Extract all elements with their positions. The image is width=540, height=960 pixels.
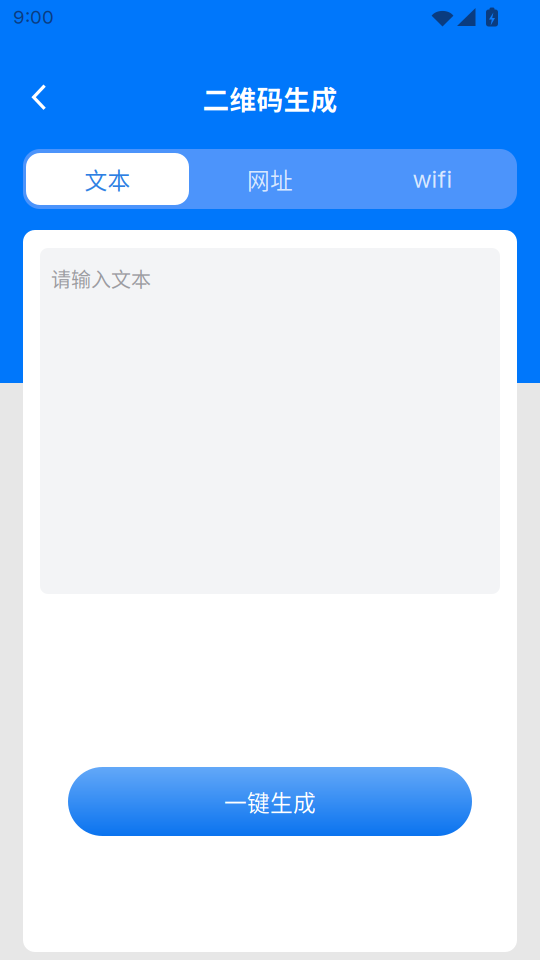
staticText: 网址 (247, 163, 293, 195)
staticText: 请输入文本 (51, 264, 151, 293)
button[interactable]: wifi (348, 149, 517, 209)
staticText: 9:00 (13, 6, 54, 28)
button[interactable]: 网址 (192, 149, 348, 209)
button[interactable]: 一键生成 (68, 767, 472, 836)
staticText: 二维码生成 (202, 79, 337, 117)
staticText: 一键生成 (224, 785, 316, 818)
button[interactable]: 文本 (23, 149, 192, 209)
button[interactable]: 请输入文本 (40, 248, 500, 594)
staticText: 文本 (84, 163, 130, 195)
button[interactable]: Back (20, 72, 58, 122)
staticText: wifi (412, 164, 452, 193)
